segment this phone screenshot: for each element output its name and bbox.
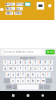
button[interactable]: d <box>16 72 20 77</box>
staticText: Send <box>47 50 54 54</box>
staticText: Kenya <box>16 2 24 6</box>
button[interactable]: x <box>16 78 20 83</box>
button[interactable]: key <box>44 84 50 89</box>
staticText: s <box>12 73 13 76</box>
button[interactable]: ?123 <box>6 84 12 89</box>
button[interactable]: o <box>43 66 48 71</box>
button[interactable]: 4 <box>18 60 23 65</box>
button[interactable]: e <box>13 66 18 71</box>
button[interactable]: 8 <box>38 60 43 65</box>
button[interactable]: Profile <box>48 4 51 7</box>
staticText: a <box>7 73 8 76</box>
staticText: j <box>38 73 39 76</box>
button[interactable]: m <box>41 78 45 83</box>
staticText: 0 <box>50 61 52 64</box>
button[interactable]: Menu <box>0 8 3 11</box>
button[interactable]: Sabit <box>6 12 13 15</box>
button[interactable]: , <box>13 84 17 89</box>
button[interactable]: 1 <box>3 60 8 65</box>
staticText: 5 <box>24 61 26 64</box>
staticText: Angular <box>6 2 15 6</box>
button[interactable]: j <box>36 72 40 77</box>
staticText: . <box>41 85 42 89</box>
button[interactable]: 7 <box>33 60 38 65</box>
staticText: t <box>25 67 26 70</box>
button[interactable]: p <box>48 66 53 71</box>
staticText: k <box>43 73 44 76</box>
button[interactable]: g <box>26 72 30 77</box>
button[interactable]: 0 <box>48 60 53 65</box>
button[interactable]: 3 <box>13 60 18 65</box>
button[interactable]: good <box>16 7 23 10</box>
staticText: l <box>48 73 49 76</box>
button[interactable]: Selected <box>25 3 30 6</box>
staticText: z <box>12 79 13 83</box>
button[interactable]: Preview <box>37 2 44 9</box>
button[interactable]: w <box>8 66 13 71</box>
staticText: q <box>4 67 6 70</box>
button[interactable]: i <box>38 66 43 71</box>
button[interactable]: k <box>41 72 45 77</box>
staticText: r <box>20 67 21 70</box>
button[interactable]: 9 <box>43 60 48 65</box>
staticText: h <box>32 73 34 76</box>
staticText: w <box>9 67 11 70</box>
staticText: i <box>40 67 41 70</box>
button[interactable]: key <box>17 84 38 89</box>
button[interactable]: 6 <box>28 60 33 65</box>
button[interactable]: Home <box>26 94 29 97</box>
button[interactable]: b <box>31 78 35 83</box>
button[interactable]: z <box>11 78 15 83</box>
staticText: , <box>14 85 15 89</box>
button[interactable]: n <box>36 78 40 83</box>
staticText: ?123 <box>7 86 11 88</box>
staticText: e <box>14 67 16 70</box>
staticText: x <box>17 79 18 83</box>
button[interactable]: q <box>3 66 8 71</box>
button[interactable]: Halla <box>14 12 22 15</box>
staticText: d <box>17 73 19 76</box>
button[interactable]: Recents <box>12 94 14 97</box>
button[interactable]: . <box>39 84 43 89</box>
button[interactable]: a <box>6 72 10 77</box>
button[interactable]: key <box>4 78 10 83</box>
staticText: p <box>50 67 52 70</box>
button[interactable]: u <box>33 66 38 71</box>
button[interactable]: 2 <box>8 60 13 65</box>
staticText: g <box>27 73 29 76</box>
button[interactable]: h <box>31 72 35 77</box>
button[interactable]: y <box>28 66 33 71</box>
button[interactable]: l <box>46 72 50 77</box>
button[interactable]: Back <box>41 94 44 97</box>
staticText: 1 <box>4 61 6 64</box>
button[interactable]: Kenya <box>16 3 24 6</box>
button[interactable]: key <box>46 78 52 83</box>
button[interactable]: Angular <box>6 3 15 6</box>
button[interactable]: v <box>26 78 30 83</box>
button[interactable]: Webinar <box>6 7 15 10</box>
staticText: c <box>22 79 23 83</box>
staticText: u <box>34 67 36 70</box>
staticText: Sabit <box>6 11 12 15</box>
staticText: Webinar <box>6 7 15 10</box>
staticText: suggestion <box>20 56 36 59</box>
staticText: y <box>30 67 31 70</box>
button[interactable]: t <box>23 66 28 71</box>
staticText: o <box>45 67 47 70</box>
button[interactable]: s <box>11 72 15 77</box>
staticText: 3 <box>14 61 16 64</box>
staticText: 9 <box>45 61 47 64</box>
staticText: 8 <box>40 61 42 64</box>
button[interactable]: 5 <box>23 60 28 65</box>
button[interactable]: Send <box>46 50 55 54</box>
button[interactable]: r <box>18 66 23 71</box>
staticText: Halla <box>15 11 21 15</box>
staticText: m <box>42 79 44 83</box>
button[interactable]: c <box>21 78 25 83</box>
staticText: 7 <box>34 61 36 64</box>
button[interactable]: Content kitkedir eten <box>1 49 44 55</box>
staticText: b <box>32 79 34 83</box>
staticText: 6 <box>29 61 31 64</box>
staticText: n <box>37 79 39 83</box>
button[interactable]: f <box>21 72 25 77</box>
